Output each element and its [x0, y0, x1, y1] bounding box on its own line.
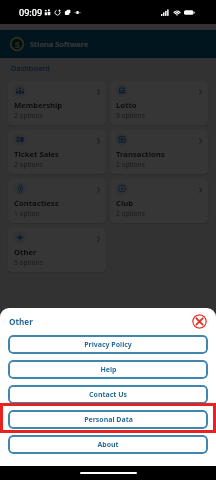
- staticText: Help: [100, 365, 117, 375]
- button[interactable]: Ticket Sales: [8, 130, 106, 174]
- staticText: 2 options: [14, 160, 43, 169]
- staticText: Privacy Policy: [84, 340, 132, 350]
- staticText: Other: [9, 316, 33, 327]
- staticText: Contact Us: [89, 390, 127, 400]
- staticText: 3 options: [116, 111, 145, 120]
- button[interactable]: Club: [110, 179, 208, 223]
- staticText: 2 options: [116, 209, 145, 218]
- staticText: Other: [14, 247, 37, 257]
- staticText: Dashboard: [11, 63, 50, 73]
- button[interactable]: Contactless: [8, 179, 106, 223]
- button[interactable]: Transactions: [110, 130, 208, 174]
- staticText: 1 option: [14, 209, 40, 218]
- button[interactable]: Privacy Policy: [8, 335, 208, 354]
- staticText: Contactless: [14, 198, 59, 208]
- staticText: Personal Data: [84, 415, 133, 425]
- button[interactable]: Personal Data: [8, 410, 208, 429]
- button[interactable]: Contact Us: [8, 385, 208, 404]
- staticText: 2 options: [14, 111, 43, 120]
- staticText: Lotto: [116, 100, 137, 110]
- staticText: Transactions: [116, 149, 165, 159]
- staticText: S: [15, 38, 20, 50]
- button[interactable]: About: [8, 435, 208, 454]
- staticText: Membership: [14, 100, 63, 110]
- staticText: 5 options: [14, 258, 43, 267]
- staticText: 2 options: [116, 160, 145, 169]
- button[interactable]: Membership: [8, 81, 106, 125]
- button[interactable]: Close: [192, 314, 207, 329]
- button[interactable]: Lotto: [110, 81, 208, 125]
- button[interactable]: Other: [8, 228, 106, 272]
- staticText: 09:09: [19, 6, 43, 18]
- staticText: Stiona Software: [30, 39, 89, 49]
- button[interactable]: Help: [8, 360, 208, 379]
- staticText: About: [97, 440, 119, 450]
- staticText: Ticket Sales: [14, 149, 59, 159]
- staticText: Club: [116, 198, 134, 208]
